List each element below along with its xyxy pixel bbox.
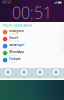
staticText: New photo liked (9, 33, 19, 35)
staticText: 1h (59, 59, 61, 61)
staticText: Sound (53, 76, 58, 78)
staticText: WhatsApp (9, 50, 24, 54)
staticText: Data (22, 76, 25, 78)
button[interactable]: WhatsApp (0, 50, 64, 57)
staticText: 3 unread mails (9, 40, 19, 42)
staticText: Wi-Fi (7, 76, 9, 78)
staticText: Gmail (9, 36, 18, 40)
staticText: 14m (58, 45, 61, 47)
staticText: Family · 2 new (9, 54, 17, 56)
staticText: 00:51 (2, 1, 11, 4)
button[interactable]: Instagram (0, 29, 64, 36)
button[interactable]: Data (16, 69, 32, 78)
staticText: 00:51 (12, 2, 52, 23)
staticText: Torch (37, 76, 42, 78)
staticText: Instagram (9, 29, 24, 33)
staticText: Phone optimisation (3, 24, 33, 27)
button[interactable]: Torch (32, 69, 48, 78)
button[interactable]: Gmail (0, 36, 64, 43)
button[interactable]: Messenger (0, 43, 64, 50)
staticText: New episode (9, 61, 18, 63)
button[interactable]: Sound (48, 69, 64, 78)
staticText: Podcast (9, 57, 20, 61)
staticText: Messenger (9, 43, 24, 47)
button[interactable]: Wi-Fi (0, 69, 16, 78)
button[interactable]: Podcast (0, 57, 64, 64)
